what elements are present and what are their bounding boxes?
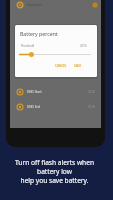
staticText: DND End: [27, 105, 41, 109]
staticText: Battery percent: [20, 30, 58, 37]
button[interactable]: DND End: [10, 99, 101, 114]
staticText: Turn off flash alerts when battery low h…: [15, 158, 94, 185]
button[interactable]: DND Start: [10, 84, 101, 99]
button[interactable]: CANCEL: [53, 62, 69, 70]
staticText: DND Start: [27, 90, 42, 94]
staticText: Silent mode: [27, 3, 42, 7]
staticText: 22:00: [88, 90, 96, 94]
staticText: 07:00: [88, 105, 96, 109]
button[interactable]: Settings: [92, 2, 98, 8]
button[interactable]: SAVE: [72, 62, 84, 70]
button[interactable]: App icon: [17, 2, 23, 8]
staticText: Threshold: [21, 44, 35, 48]
staticText: 20 %: [80, 44, 87, 48]
